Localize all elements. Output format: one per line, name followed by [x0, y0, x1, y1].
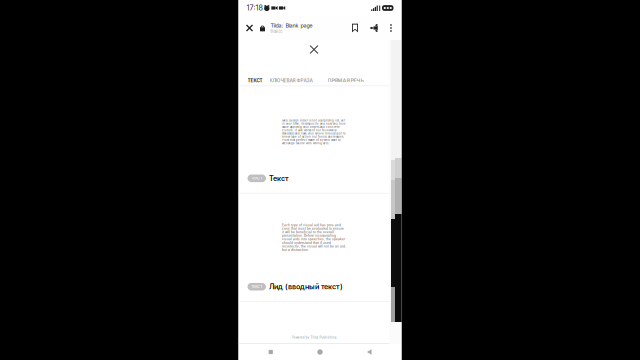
staticText: ТЕКСТ	[251, 176, 262, 180]
staticText: 17:18	[246, 4, 262, 12]
button[interactable]: Close	[239, 16, 259, 40]
button[interactable]: Recent apps	[254, 344, 288, 360]
button[interactable]: КЛЮЧЕВАЯ ФРАЗА	[262, 75, 312, 85]
button[interactable]: Back	[352, 344, 386, 360]
button[interactable]: ТЕКСТ	[238, 164, 389, 193]
staticText: Лид (вводный текст)	[269, 282, 343, 291]
staticText: ПРЯМАЯ РЕЧЬ	[327, 77, 363, 84]
button[interactable]: Bookmark	[345, 16, 364, 40]
button[interactable]: ПРЯМАЯ РЕЧЬ	[312, 75, 363, 85]
staticText: Tilda: Blank page	[270, 22, 312, 29]
staticText: КЛЮЧЕВАЯ ФРАЗА	[269, 78, 312, 83]
button[interactable]: Home	[303, 344, 337, 360]
staticText: Текст	[269, 174, 289, 183]
button[interactable]: Site information	[259, 16, 345, 40]
staticText: Web design order is not a surprising lis…	[282, 119, 346, 145]
staticText: ТЕКСТ	[247, 78, 262, 83]
staticText: tilda.cc	[270, 29, 282, 34]
staticText: Powered by Tilda Publishing	[291, 335, 336, 339]
button[interactable]: Close editor	[238, 40, 389, 59]
staticText: Each type of visual aid has pros and con…	[282, 223, 346, 252]
staticText: ТЕКСТ	[251, 285, 262, 289]
button[interactable]: Share	[364, 16, 383, 40]
button[interactable]: ТЕКСТ	[238, 272, 389, 301]
button[interactable]: ТЕКСТ	[247, 75, 262, 85]
button[interactable]: More options	[383, 16, 398, 40]
